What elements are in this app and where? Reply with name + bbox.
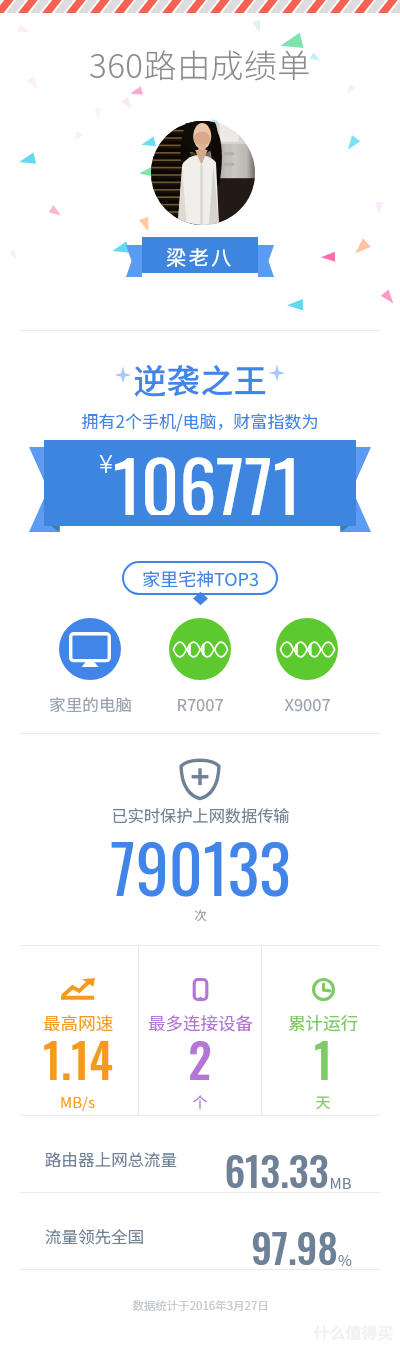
staticText: 最多连接设备 [148, 1010, 253, 1035]
button[interactable]: 家里宅神TOP3 [122, 561, 278, 595]
other: Phone [276, 618, 338, 680]
staticText: 数据统计于2016年3月27日 [132, 1297, 269, 1314]
staticText: 1 [314, 1024, 332, 1094]
button[interactable]: 流量领先全国 [0, 1193, 400, 1269]
staticText: 天 [315, 1091, 331, 1113]
other: Phone [169, 618, 231, 680]
staticText: MB/s [60, 1091, 95, 1113]
staticText: % [338, 1249, 352, 1271]
staticText: 最高网速 [43, 1010, 113, 1035]
button[interactable]: Speed [17, 946, 138, 1115]
staticText: R7007 [176, 692, 224, 716]
staticText: 梁老八 [166, 242, 234, 271]
staticText: 次 [194, 905, 207, 923]
staticText: 613.33 [224, 1140, 329, 1199]
staticText: ¥ [99, 443, 113, 481]
staticText: 路由器上网总流量 [45, 1147, 177, 1171]
other: Speed [60, 978, 95, 1001]
staticText: MB [329, 1172, 352, 1194]
staticText: 流量领先全国 [45, 1224, 144, 1248]
staticText: 2 [188, 1024, 212, 1094]
button[interactable]: 路由器上网总流量 [0, 1116, 400, 1192]
staticText: 家里的电脑 [49, 692, 132, 716]
staticText: 累计运行 [288, 1010, 358, 1035]
other: Computer [59, 618, 121, 680]
staticText: 106771 [113, 429, 301, 515]
staticText: 790133 [110, 817, 291, 915]
staticText: 个 [192, 1091, 208, 1113]
staticText: 1.14 [43, 1024, 113, 1094]
staticText: 360路由成绩单 [89, 40, 311, 88]
staticText: 拥有2个手机/电脑，财富指数为 [81, 408, 319, 433]
button[interactable]: Uptime [262, 946, 384, 1115]
staticText: X9007 [284, 692, 331, 716]
button[interactable]: Phone [276, 618, 338, 680]
button[interactable]: Phone [169, 618, 231, 680]
button[interactable]: Devices [139, 946, 261, 1115]
staticText: 逆袭之王 [133, 355, 267, 403]
staticText: 家里宅神TOP3 [142, 565, 259, 591]
staticText: 97.98 [251, 1217, 338, 1276]
other: Security shield [179, 757, 221, 799]
staticText: 已实时保护上网数据传输 [111, 803, 290, 826]
other: Devices [183, 978, 218, 1001]
staticText: 什么值得买 [313, 1320, 394, 1343]
other: Uptime [306, 978, 341, 1001]
button[interactable]: Computer [59, 618, 121, 680]
